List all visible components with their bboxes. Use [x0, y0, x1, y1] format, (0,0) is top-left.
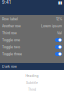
staticText: 12% — [56, 17, 62, 21]
staticText: Subtitle — [26, 81, 38, 85]
staticText: Toggle two — [2, 45, 20, 49]
staticText: Dark row — [2, 64, 17, 69]
staticText: Third row — [2, 31, 17, 35]
staticText: Row label — [2, 17, 18, 21]
staticText: Lorem ipsum — [41, 24, 62, 28]
staticText: Val — [57, 31, 62, 35]
staticText: Toggle three — [2, 52, 22, 56]
staticText: 9:41 — [2, 0, 11, 5]
staticText: Third — [28, 88, 36, 92]
staticText: ▮▮ — [58, 0, 62, 5]
staticText: Heading — [25, 74, 38, 78]
staticText: Toggle one — [2, 38, 20, 42]
staticText: Another row — [2, 24, 21, 28]
